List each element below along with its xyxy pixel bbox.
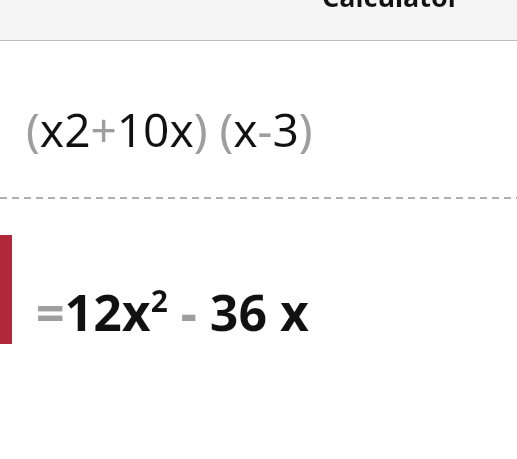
button[interactable]: Calculator: [0, 0, 517, 41]
staticText: Calculator: [322, 0, 460, 15]
button[interactable]: Result highlight: [0, 235, 517, 344]
staticText: =12x2 - 36 x: [36, 278, 309, 346]
button[interactable]: (x2+10x) (x-3): [0, 41, 517, 196]
staticText: (x2+10x) (x-3): [26, 98, 313, 161]
